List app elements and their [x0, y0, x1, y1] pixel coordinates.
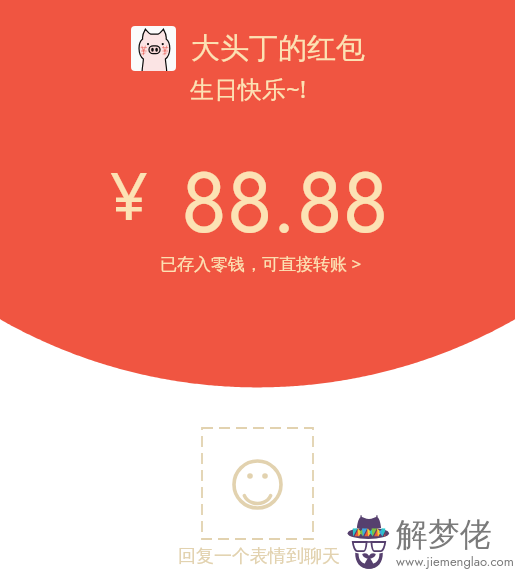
staticText: 已存入零钱，可直接转账 >: [160, 252, 362, 275]
button[interactable]: Sender avatar: [131, 26, 176, 71]
staticText: www.jiemenglao.com: [396, 552, 514, 571]
button[interactable]: Reply with a sticker: [202, 428, 313, 539]
staticText: 88.88: [181, 142, 389, 263]
staticText: 大头丁的红包: [191, 30, 365, 67]
staticText: 解梦佬: [396, 514, 492, 554]
staticText: 回复一个表情到聊天: [178, 545, 340, 568]
staticText: 生日快乐~!: [190, 72, 307, 105]
staticText: ¥: [110, 149, 148, 239]
button[interactable]: 已存入零钱，可直接转账 >: [152, 244, 370, 283]
